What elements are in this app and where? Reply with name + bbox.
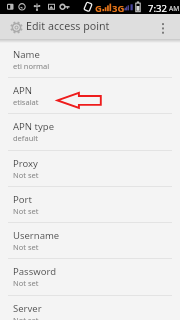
staticText: eti normal <box>13 61 50 71</box>
button[interactable]: Port <box>0 187 180 223</box>
staticText: Edit access point <box>26 19 110 34</box>
button[interactable]: More options <box>152 14 174 39</box>
staticText: APN <box>13 84 33 97</box>
staticText: Not set <box>13 170 39 180</box>
staticText: Server <box>13 302 42 315</box>
button[interactable]: Name <box>0 42 180 78</box>
staticText: Username <box>13 229 60 242</box>
staticText: etisalat <box>13 97 39 107</box>
staticText: 7:32 <box>148 2 167 15</box>
button[interactable]: APN <box>0 78 180 114</box>
staticText: Not set <box>13 242 39 252</box>
staticText: Not set <box>13 206 39 216</box>
staticText: Not set <box>13 315 39 320</box>
button[interactable]: APN type <box>0 114 180 150</box>
button[interactable]: Username <box>0 223 180 259</box>
staticText: Proxy <box>13 157 38 170</box>
staticText: Not set <box>13 278 39 288</box>
staticText: G <box>95 2 102 15</box>
staticText: Port <box>13 193 32 206</box>
button[interactable]: App icon <box>8 19 24 35</box>
staticText: 3G <box>112 2 125 15</box>
button[interactable]: Password <box>0 259 180 295</box>
staticText: AM <box>169 4 180 13</box>
button[interactable]: Server <box>0 296 180 320</box>
staticText: APN type <box>13 120 54 133</box>
button[interactable]: Proxy <box>0 151 180 187</box>
staticText: Password <box>13 265 56 278</box>
staticText: Name <box>13 48 40 61</box>
staticText: default <box>13 133 38 143</box>
